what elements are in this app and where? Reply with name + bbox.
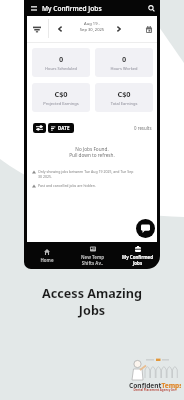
staticText: No Jobs Found. xyxy=(27,146,157,152)
button[interactable]: C$0 xyxy=(32,83,90,112)
button[interactable]: Filters xyxy=(33,123,46,133)
staticText: ConfidentTemps xyxy=(129,381,181,390)
staticText: C$0 xyxy=(32,89,90,99)
staticText: Total Earnings xyxy=(95,101,153,106)
button[interactable]: C$0 xyxy=(95,83,153,112)
staticText: C$0 xyxy=(95,89,153,99)
button[interactable]: Menu xyxy=(29,4,38,13)
button[interactable]: Pick date range xyxy=(140,16,158,42)
button[interactable]: Home xyxy=(24,242,70,269)
staticText: 0 results xyxy=(134,125,152,131)
staticText: Dental Placement Agency Inc. xyxy=(129,388,181,392)
staticText: Jobs xyxy=(115,260,160,266)
staticText: Hours Worked xyxy=(95,66,153,71)
staticText: DATE xyxy=(58,125,70,131)
staticText: Aug 19 - xyxy=(72,21,112,27)
staticText: Sep 30, 2025 xyxy=(72,27,112,33)
button[interactable]: 0 xyxy=(32,48,90,77)
staticText: Access Amazing xyxy=(0,285,184,302)
button[interactable]: Messages xyxy=(136,219,155,238)
staticText: My Confirmed Jobs xyxy=(42,4,102,13)
staticText: Pull down to refresh. xyxy=(27,152,157,158)
button[interactable]: DATE xyxy=(48,123,74,133)
staticText: Home xyxy=(24,257,70,263)
staticText: Jobs xyxy=(0,302,184,319)
staticText: 0 xyxy=(95,54,153,64)
button[interactable]: Next period xyxy=(112,16,126,42)
button[interactable]: New Temp xyxy=(70,242,115,269)
staticText: Only showing jobs between Tue Aug 19 202… xyxy=(38,169,135,179)
staticText: 0 xyxy=(32,54,90,64)
button[interactable]: Filter xyxy=(27,16,46,42)
button[interactable]: My Confirmed xyxy=(115,242,160,269)
button[interactable]: 0 xyxy=(95,48,153,77)
staticText: Past and cancelled jobs are hidden. xyxy=(38,183,135,188)
button[interactable]: Previous period xyxy=(53,16,67,42)
staticText: New Temp xyxy=(70,254,115,260)
staticText: My Confirmed xyxy=(115,254,160,260)
button[interactable]: Search xyxy=(146,3,156,13)
staticText: Projected Earnings xyxy=(32,101,90,106)
staticText: Shifts Av.. xyxy=(70,260,115,266)
staticText: Hours Scheduled xyxy=(32,66,90,71)
